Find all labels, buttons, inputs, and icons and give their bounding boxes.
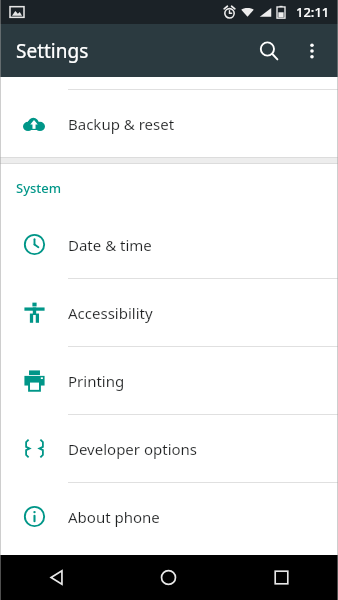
button[interactable]: Accessibility [0, 279, 338, 346]
staticText: Printing [68, 371, 125, 391]
staticText: Backup & reset [68, 114, 175, 134]
button[interactable]: Developer options [0, 415, 338, 482]
staticText: 12:11 [296, 3, 330, 21]
button[interactable]: Back [0, 555, 112, 600]
button[interactable]: Date & time [0, 211, 338, 278]
staticText: About phone [68, 507, 160, 527]
button[interactable]: Printing [0, 347, 338, 414]
staticText: Accessibility [68, 303, 153, 323]
button[interactable]: Recent apps [225, 555, 338, 600]
button[interactable]: About phone [0, 483, 338, 550]
staticText: Settings [16, 38, 89, 64]
button[interactable]: Backup & reset [0, 90, 338, 157]
staticText: Developer options [68, 439, 198, 459]
staticText: Date & time [68, 235, 152, 255]
button[interactable]: More options [292, 31, 332, 71]
button[interactable]: Home [112, 555, 225, 600]
staticText: System [16, 179, 62, 197]
button[interactable]: Search [246, 28, 292, 74]
